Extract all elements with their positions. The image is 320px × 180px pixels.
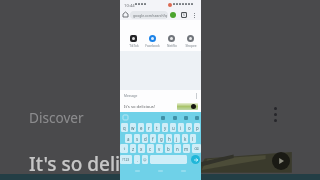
button[interactable]: k: [182, 134, 188, 143]
button[interactable]: e: [138, 123, 144, 132]
button[interactable]: x: [138, 144, 145, 153]
button[interactable]: Symbols: [120, 155, 132, 164]
staticText: a: [127, 136, 130, 142]
button[interactable]: More options: [269, 103, 281, 125]
staticText: 10:44: [124, 3, 135, 9]
staticText: Discover: [29, 108, 84, 127]
staticText: Message: [124, 94, 138, 98]
button[interactable]: o: [186, 123, 192, 132]
button[interactable]: TikTok: [125, 21, 142, 50]
staticText: ,: [137, 157, 138, 162]
button[interactable]: c: [147, 144, 154, 153]
button[interactable]: d: [142, 134, 148, 143]
staticText: Shopee: [185, 44, 197, 48]
button[interactable]: y: [162, 123, 168, 132]
button[interactable]: Comma: [134, 155, 140, 164]
staticText: n: [176, 146, 179, 152]
staticText: d: [144, 136, 147, 142]
button[interactable]: q: [121, 123, 128, 132]
button[interactable]: Emoji: [142, 155, 148, 164]
button[interactable]: GIF: [171, 114, 178, 121]
staticText: j: [176, 136, 178, 142]
staticText: c: [149, 146, 152, 152]
button[interactable]: b: [165, 144, 172, 153]
button[interactable]: Tabs: [179, 10, 188, 19]
button[interactable]: Menu: [190, 10, 198, 20]
staticText: r: [148, 125, 150, 131]
staticText: It's so delicious!: [124, 104, 155, 110]
staticText: ☺: [143, 158, 147, 162]
button[interactable]: p: [194, 123, 200, 132]
staticText: w: [131, 125, 135, 131]
staticText: 6: [183, 13, 185, 17]
staticText: u: [172, 125, 175, 131]
staticText: y: [164, 125, 167, 131]
staticText: google.com/search?q: [133, 13, 168, 18]
button[interactable]: a: [125, 134, 132, 143]
button[interactable]: m: [183, 144, 190, 153]
button[interactable]: Home: [121, 10, 130, 19]
button[interactable]: j: [174, 134, 180, 143]
staticText: o: [188, 125, 191, 131]
button[interactable]: Back: [132, 167, 143, 175]
staticText: z: [132, 146, 135, 152]
button[interactable]: Stickers: [159, 114, 166, 121]
button[interactable]: Send: [191, 155, 200, 164]
staticText: b: [167, 146, 170, 152]
staticText: It's so delicious!: [29, 151, 173, 177]
button[interactable]: z: [130, 144, 136, 153]
button[interactable]: Clipboard: [122, 114, 128, 120]
button[interactable]: l: [190, 134, 196, 143]
staticText: i: [180, 125, 182, 131]
staticText: q: [123, 125, 126, 131]
button[interactable]: f: [150, 134, 156, 143]
staticText: x: [140, 146, 143, 152]
staticText: TikTok: [129, 44, 139, 48]
staticText: ⇧: [123, 147, 126, 151]
staticText: Netflix: [167, 44, 177, 48]
staticText: k: [184, 136, 187, 142]
button[interactable]: u: [170, 123, 176, 132]
button[interactable]: i: [178, 123, 184, 132]
button[interactable]: r: [146, 123, 152, 132]
staticText: ?123: [122, 157, 130, 162]
button[interactable]: google.com/search?q: [130, 11, 168, 19]
button[interactable]: g: [158, 134, 164, 143]
button[interactable]: Emoji: [182, 114, 189, 121]
button[interactable]: Account: [170, 12, 176, 18]
staticText: e: [140, 125, 143, 131]
button[interactable]: Shift: [120, 144, 128, 153]
staticText: ⌫: [194, 147, 199, 151]
staticText: h: [168, 136, 171, 142]
button[interactable]: Facebook: [144, 21, 161, 50]
staticText: v: [158, 146, 161, 152]
button[interactable]: s: [134, 134, 140, 143]
button[interactable]: Settings: [193, 114, 200, 121]
button[interactable]: Home: [155, 167, 166, 175]
staticText: s: [136, 136, 139, 142]
staticText: m: [184, 146, 189, 152]
button[interactable]: t: [154, 123, 160, 132]
button[interactable]: Backspace: [192, 144, 201, 153]
staticText: f: [152, 136, 154, 142]
button[interactable]: n: [174, 144, 181, 153]
button[interactable]: Play: [272, 152, 290, 170]
button[interactable]: Recents: [178, 167, 189, 175]
button[interactable]: v: [156, 144, 163, 153]
button[interactable]: w: [130, 123, 136, 132]
button[interactable]: Space: [150, 155, 187, 164]
staticText: p: [196, 125, 199, 131]
staticText: Facebook: [145, 44, 160, 48]
button[interactable]: Shopee: [182, 21, 199, 50]
staticText: g: [160, 136, 163, 142]
button[interactable]: h: [166, 134, 172, 143]
staticText: t: [156, 125, 158, 131]
staticText: l: [192, 136, 194, 142]
button[interactable]: Netflix: [163, 21, 180, 50]
